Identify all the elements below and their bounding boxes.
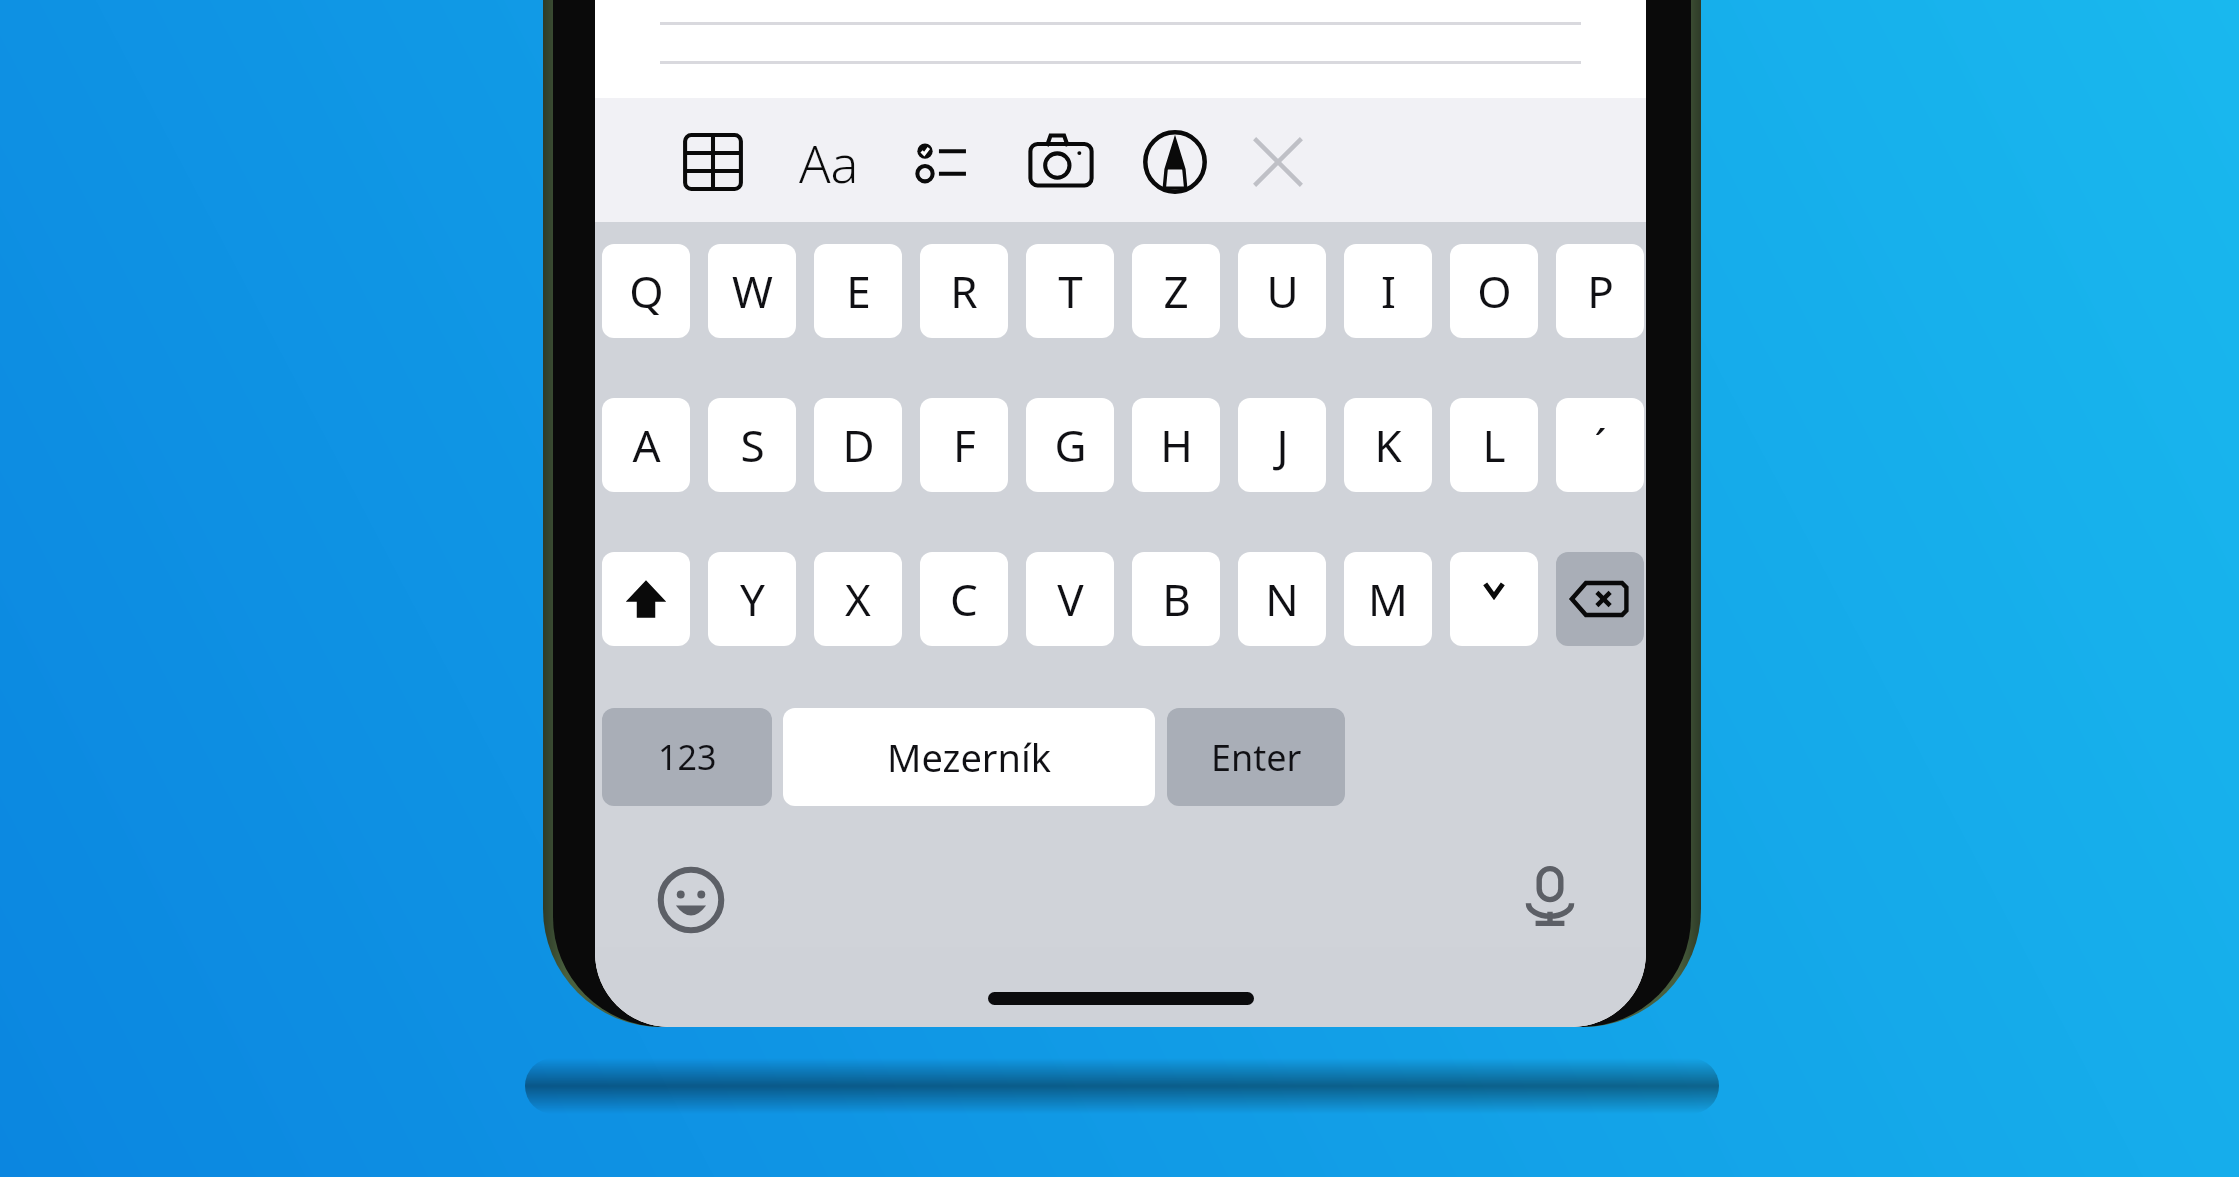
button[interactable]: 123 (602, 708, 772, 806)
staticText: C (950, 569, 978, 629)
staticText: Z (1163, 261, 1189, 321)
button[interactable]: Aa (784, 122, 874, 202)
button[interactable]: T (1026, 244, 1114, 338)
button[interactable]: Text format (784, 117, 874, 207)
staticText: W (732, 261, 773, 321)
staticText: R (950, 261, 978, 321)
staticText: O (1477, 261, 1512, 321)
staticText: F (953, 415, 976, 475)
staticText: A (632, 415, 661, 475)
button[interactable]: Emoji (655, 864, 727, 936)
staticText: H (1160, 415, 1193, 475)
button[interactable]: J (1238, 398, 1326, 492)
button[interactable]: W (708, 244, 796, 338)
button[interactable]: C (920, 552, 1008, 646)
button[interactable]: Shift (602, 552, 690, 646)
staticText: B (1162, 569, 1191, 629)
button[interactable]: Backspace (1556, 552, 1644, 646)
button[interactable]: Camera (1016, 117, 1106, 207)
staticText: T (1058, 261, 1083, 321)
button[interactable]: A (602, 398, 690, 492)
button[interactable]: F (920, 398, 1008, 492)
button[interactable]: U (1238, 244, 1326, 338)
staticText: I (1381, 261, 1396, 321)
button[interactable]: S (708, 398, 796, 492)
button[interactable]: O (1450, 244, 1538, 338)
staticText: E (846, 261, 871, 321)
button[interactable]: Table (668, 117, 758, 207)
button[interactable]: Close (1233, 117, 1323, 207)
button[interactable]: H (1132, 398, 1220, 492)
button[interactable]: M (1344, 552, 1432, 646)
staticText: K (1374, 415, 1402, 475)
staticText: M (1368, 569, 1408, 629)
button[interactable]: Mezerník (783, 708, 1155, 806)
button[interactable]: K (1344, 398, 1432, 492)
button[interactable]: ´ (1556, 398, 1644, 492)
button[interactable]: Caron (1450, 552, 1538, 646)
staticText: L (1482, 415, 1506, 475)
staticText: Q (629, 261, 664, 321)
button[interactable]: Markup (1130, 117, 1220, 207)
button[interactable]: Z (1132, 244, 1220, 338)
staticText: Enter (1211, 733, 1302, 782)
button[interactable]: R (920, 244, 1008, 338)
staticText: Mezerník (887, 731, 1052, 783)
button[interactable]: Enter (1167, 708, 1345, 806)
button[interactable]: G (1026, 398, 1114, 492)
staticText: 123 (658, 734, 717, 780)
button[interactable]: L (1450, 398, 1538, 492)
staticText: V (1057, 569, 1084, 629)
staticText: Y (740, 569, 765, 629)
button[interactable]: E (814, 244, 902, 338)
button[interactable]: D (814, 398, 902, 492)
staticText: U (1266, 261, 1299, 321)
button[interactable]: Y (708, 552, 796, 646)
staticText: Aa (799, 127, 859, 198)
staticText: N (1265, 569, 1299, 629)
button[interactable]: B (1132, 552, 1220, 646)
staticText: ´ (1594, 415, 1607, 475)
staticText: S (740, 415, 765, 475)
button[interactable]: I (1344, 244, 1432, 338)
button[interactable]: Checklist (898, 117, 988, 207)
staticText: D (842, 415, 875, 475)
button[interactable]: N (1238, 552, 1326, 646)
button[interactable]: Dictation (1514, 860, 1586, 932)
staticText: G (1054, 415, 1087, 475)
button[interactable]: Q (602, 244, 690, 338)
button[interactable]: X (814, 552, 902, 646)
staticText: X (845, 569, 871, 629)
staticText: J (1276, 415, 1289, 475)
button[interactable]: P (1556, 244, 1644, 338)
staticText: P (1587, 261, 1614, 321)
button[interactable]: V (1026, 552, 1114, 646)
